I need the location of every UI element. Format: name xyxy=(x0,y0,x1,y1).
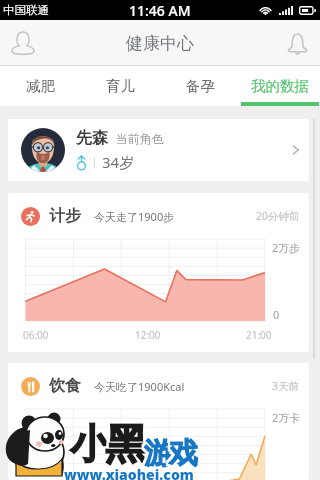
staticText: 小 xyxy=(72,421,112,471)
button[interactable]: Profile xyxy=(0,20,46,66)
staticText: 今天吃了1900Kcal xyxy=(94,379,185,394)
staticText: 今天走了1900步 xyxy=(94,209,175,224)
staticText: 2万步 xyxy=(272,240,301,255)
staticText: 小 xyxy=(68,419,108,469)
staticText: 游 xyxy=(146,435,175,472)
staticText: 2万卡 xyxy=(272,410,301,425)
staticText: 游 xyxy=(146,433,175,470)
staticText: 小 xyxy=(70,421,110,471)
staticText: 0 xyxy=(273,307,280,322)
staticText: 戏 xyxy=(169,433,198,470)
staticText: 先森 xyxy=(76,128,108,148)
staticText: 游 xyxy=(144,435,173,472)
staticText: 游 xyxy=(142,435,171,472)
staticText: 黑 xyxy=(107,417,149,470)
staticText: 戏 xyxy=(169,437,198,474)
staticText: 小 xyxy=(72,417,112,467)
button[interactable]: 减肥 xyxy=(0,66,80,106)
staticText: 戏 xyxy=(171,437,200,474)
staticText: 21:00 xyxy=(246,328,272,342)
staticText: 当前角色 xyxy=(116,131,164,146)
staticText: 戏 xyxy=(167,437,196,474)
staticText: 34岁 xyxy=(102,152,135,172)
staticText: 小 xyxy=(68,421,108,471)
staticText: 小 xyxy=(70,419,110,469)
staticText: 游 xyxy=(142,437,171,474)
staticText: 戏 xyxy=(167,435,196,472)
staticText: 戏 xyxy=(171,433,200,470)
staticText: 黑 xyxy=(103,421,145,474)
staticText: 减肥 xyxy=(26,77,55,95)
staticText: 3天前 xyxy=(272,379,300,393)
staticText: 计步 xyxy=(49,206,81,226)
staticText: 黑 xyxy=(105,417,147,470)
staticText: 戏 xyxy=(169,435,198,472)
staticText: 黑 xyxy=(103,419,145,472)
staticText: 戏 xyxy=(167,433,196,470)
staticText: 黑 xyxy=(105,421,147,474)
staticText: 11:46 AM xyxy=(129,1,191,20)
staticText: 备孕 xyxy=(186,77,215,95)
staticText: 小 xyxy=(72,419,112,469)
staticText: 育儿 xyxy=(106,77,135,95)
button[interactable]: Notifications xyxy=(274,20,320,66)
staticText: 黑 xyxy=(105,419,147,472)
staticText: 黑 xyxy=(107,421,149,474)
staticText: 20分钟前 xyxy=(256,209,300,223)
staticText: 游 xyxy=(144,437,173,474)
staticText: 黑 xyxy=(107,419,149,472)
button[interactable]: 饮食 xyxy=(8,363,309,480)
staticText: 12:00 xyxy=(135,328,161,342)
staticText: 小 xyxy=(68,417,108,467)
button[interactable]: 先森 xyxy=(8,119,309,181)
staticText: 游 xyxy=(142,433,171,470)
button[interactable]: 我的数据 xyxy=(240,66,320,106)
staticText: 我的数据 xyxy=(251,77,309,95)
staticText: 游 xyxy=(144,433,173,470)
staticText: 中国联通 xyxy=(3,3,49,17)
staticText: 戏 xyxy=(171,435,200,472)
staticText: www.xiaohei.com xyxy=(64,465,194,480)
staticText: 游 xyxy=(146,437,175,474)
button[interactable]: 计步 xyxy=(8,193,309,352)
button[interactable]: 备孕 xyxy=(160,66,240,106)
staticText: 06:00 xyxy=(23,328,49,342)
staticText: 小 xyxy=(70,417,110,467)
staticText: 黑 xyxy=(103,417,145,470)
staticText: 饮食 xyxy=(49,376,81,396)
button[interactable]: 育儿 xyxy=(80,66,160,106)
staticText: 健康中心 xyxy=(126,33,194,54)
